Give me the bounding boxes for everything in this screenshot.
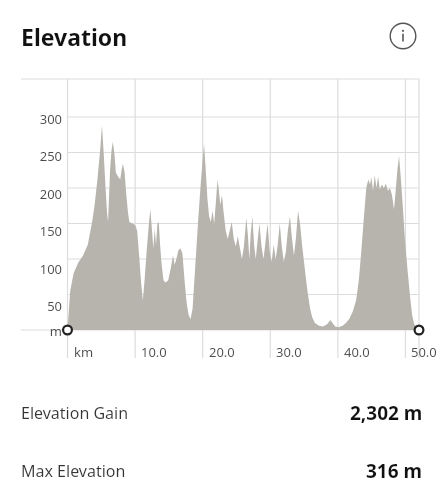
staticText: 40.0 [344, 343, 370, 361]
staticText: km [74, 343, 94, 361]
staticText: m [20, 322, 62, 340]
staticText: 50 [20, 297, 62, 315]
staticText: Max Elevation [21, 460, 126, 482]
staticText: 20.0 [209, 343, 235, 361]
staticText: 150 [20, 222, 62, 240]
button[interactable]: Max Elevation [0, 450, 444, 492]
button[interactable]: Elevation Gain [0, 392, 444, 434]
staticText: 30.0 [276, 343, 302, 361]
staticText: 250 [20, 147, 62, 165]
staticText: 316 m [366, 458, 423, 484]
staticText: 100 [20, 260, 62, 278]
staticText: 10.0 [141, 343, 167, 361]
button[interactable]: Info [387, 20, 419, 52]
staticText: 300 [20, 110, 62, 128]
staticText: 200 [20, 185, 62, 203]
staticText: Elevation [21, 21, 128, 52]
staticText: Elevation Gain [21, 402, 129, 424]
staticText: 2,302 m [350, 400, 423, 426]
staticText: 50.0 [411, 343, 437, 361]
